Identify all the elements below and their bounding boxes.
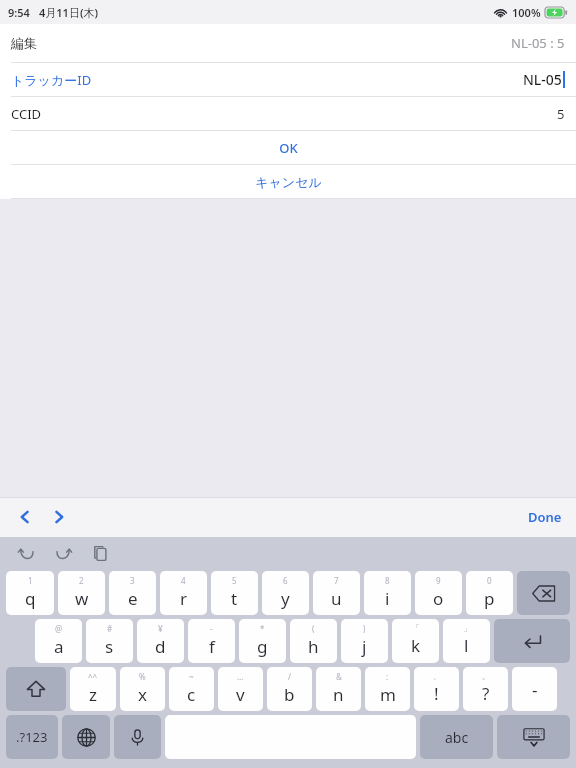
staticText: ^^: [88, 671, 98, 682]
staticText: 5: [232, 575, 237, 586]
button[interactable]: Done: [514, 497, 576, 537]
staticText: a: [54, 635, 64, 658]
staticText: 9: [436, 575, 441, 586]
staticText: 5: [557, 105, 565, 123]
button[interactable]: CCID: [0, 97, 576, 130]
staticText: s: [105, 635, 114, 658]
staticText: -: [532, 678, 538, 701]
button[interactable]: トラッカーID: [0, 63, 576, 96]
button[interactable]: OK: [0, 131, 576, 164]
staticText: 1: [28, 575, 33, 586]
staticText: *: [260, 623, 265, 634]
button[interactable]: 9: [415, 571, 462, 615]
button[interactable]: Paste: [86, 539, 114, 567]
button[interactable]: #: [86, 619, 133, 663]
button[interactable]: 3: [109, 571, 156, 615]
staticText: /: [288, 671, 291, 682]
button[interactable]: Return: [494, 619, 570, 663]
button[interactable]: キャンセル: [0, 165, 576, 198]
button[interactable]: /: [267, 667, 312, 711]
staticText: 」: [463, 623, 471, 633]
staticText: p: [484, 587, 495, 610]
staticText: l: [464, 634, 469, 657]
staticText: @: [55, 623, 63, 634]
button[interactable]: 」: [443, 619, 490, 663]
staticText: ~: [189, 671, 194, 682]
staticText: ?: [482, 682, 490, 705]
button[interactable]: .?123: [6, 715, 58, 759]
button[interactable]: ): [341, 619, 388, 663]
staticText: %: [139, 671, 146, 682]
staticText: 7: [334, 575, 339, 586]
button[interactable]: 8: [364, 571, 411, 615]
button[interactable]: 。: [463, 667, 508, 711]
button[interactable]: Next field: [44, 502, 74, 532]
button[interactable]: Hide keyboard: [497, 715, 570, 759]
staticText: 、: [433, 671, 441, 681]
staticText: u: [331, 587, 342, 610]
button[interactable]: 4: [160, 571, 207, 615]
staticText: w: [75, 587, 89, 610]
staticText: k: [411, 634, 421, 657]
staticText: h: [308, 635, 319, 658]
staticText: o: [433, 587, 444, 610]
staticText: -: [210, 623, 213, 634]
staticText: b: [284, 683, 295, 706]
staticText: abc: [445, 728, 469, 747]
button[interactable]: 5: [211, 571, 258, 615]
staticText: j: [362, 635, 367, 658]
button[interactable]: Delete: [517, 571, 570, 615]
button[interactable]: Dictation: [114, 715, 161, 759]
button[interactable]: Shift: [6, 667, 66, 711]
staticText: Done: [528, 508, 562, 526]
staticText: v: [236, 683, 245, 706]
staticText: 0: [487, 575, 492, 586]
button[interactable]: 6: [262, 571, 309, 615]
button[interactable]: @: [35, 619, 82, 663]
button[interactable]: Change language: [62, 715, 110, 759]
button[interactable]: -: [512, 667, 557, 711]
button[interactable]: 1: [6, 571, 54, 615]
staticText: 。: [482, 671, 490, 681]
staticText: 「: [412, 623, 420, 633]
staticText: #: [107, 623, 113, 634]
button[interactable]: ~: [169, 667, 214, 711]
button[interactable]: 2: [58, 571, 105, 615]
button[interactable]: -: [188, 619, 235, 663]
staticText: 100%: [512, 5, 541, 20]
button[interactable]: 0: [466, 571, 513, 615]
button[interactable]: ¥: [137, 619, 184, 663]
staticText: 編集: [11, 35, 37, 51]
button[interactable]: Redo: [49, 539, 77, 567]
staticText: :: [386, 671, 389, 682]
staticText: e: [128, 587, 138, 610]
button[interactable]: 「: [392, 619, 439, 663]
staticText: i: [385, 587, 390, 610]
staticText: z: [89, 683, 97, 706]
button[interactable]: (: [290, 619, 337, 663]
button[interactable]: 編集: [0, 24, 576, 62]
button[interactable]: ^^: [70, 667, 116, 711]
button[interactable]: Previous field: [10, 502, 40, 532]
button[interactable]: *: [239, 619, 286, 663]
staticText: 9:54: [8, 5, 30, 20]
staticText: m: [380, 683, 396, 706]
staticText: d: [155, 635, 166, 658]
button[interactable]: %: [120, 667, 165, 711]
staticText: OK: [279, 139, 298, 157]
button[interactable]: 7: [313, 571, 360, 615]
button[interactable]: abc: [420, 715, 493, 759]
button[interactable]: 、: [414, 667, 459, 711]
staticText: (: [312, 623, 315, 634]
staticText: t: [231, 587, 238, 610]
button[interactable]: &: [316, 667, 361, 711]
button[interactable]: :: [365, 667, 410, 711]
staticText: ¥: [158, 623, 163, 634]
staticText: .?123: [16, 728, 48, 746]
staticText: f: [209, 635, 215, 658]
button[interactable]: Undo: [12, 539, 40, 567]
staticText: &: [336, 671, 342, 682]
staticText: r: [180, 587, 188, 610]
button[interactable]: …: [218, 667, 263, 711]
